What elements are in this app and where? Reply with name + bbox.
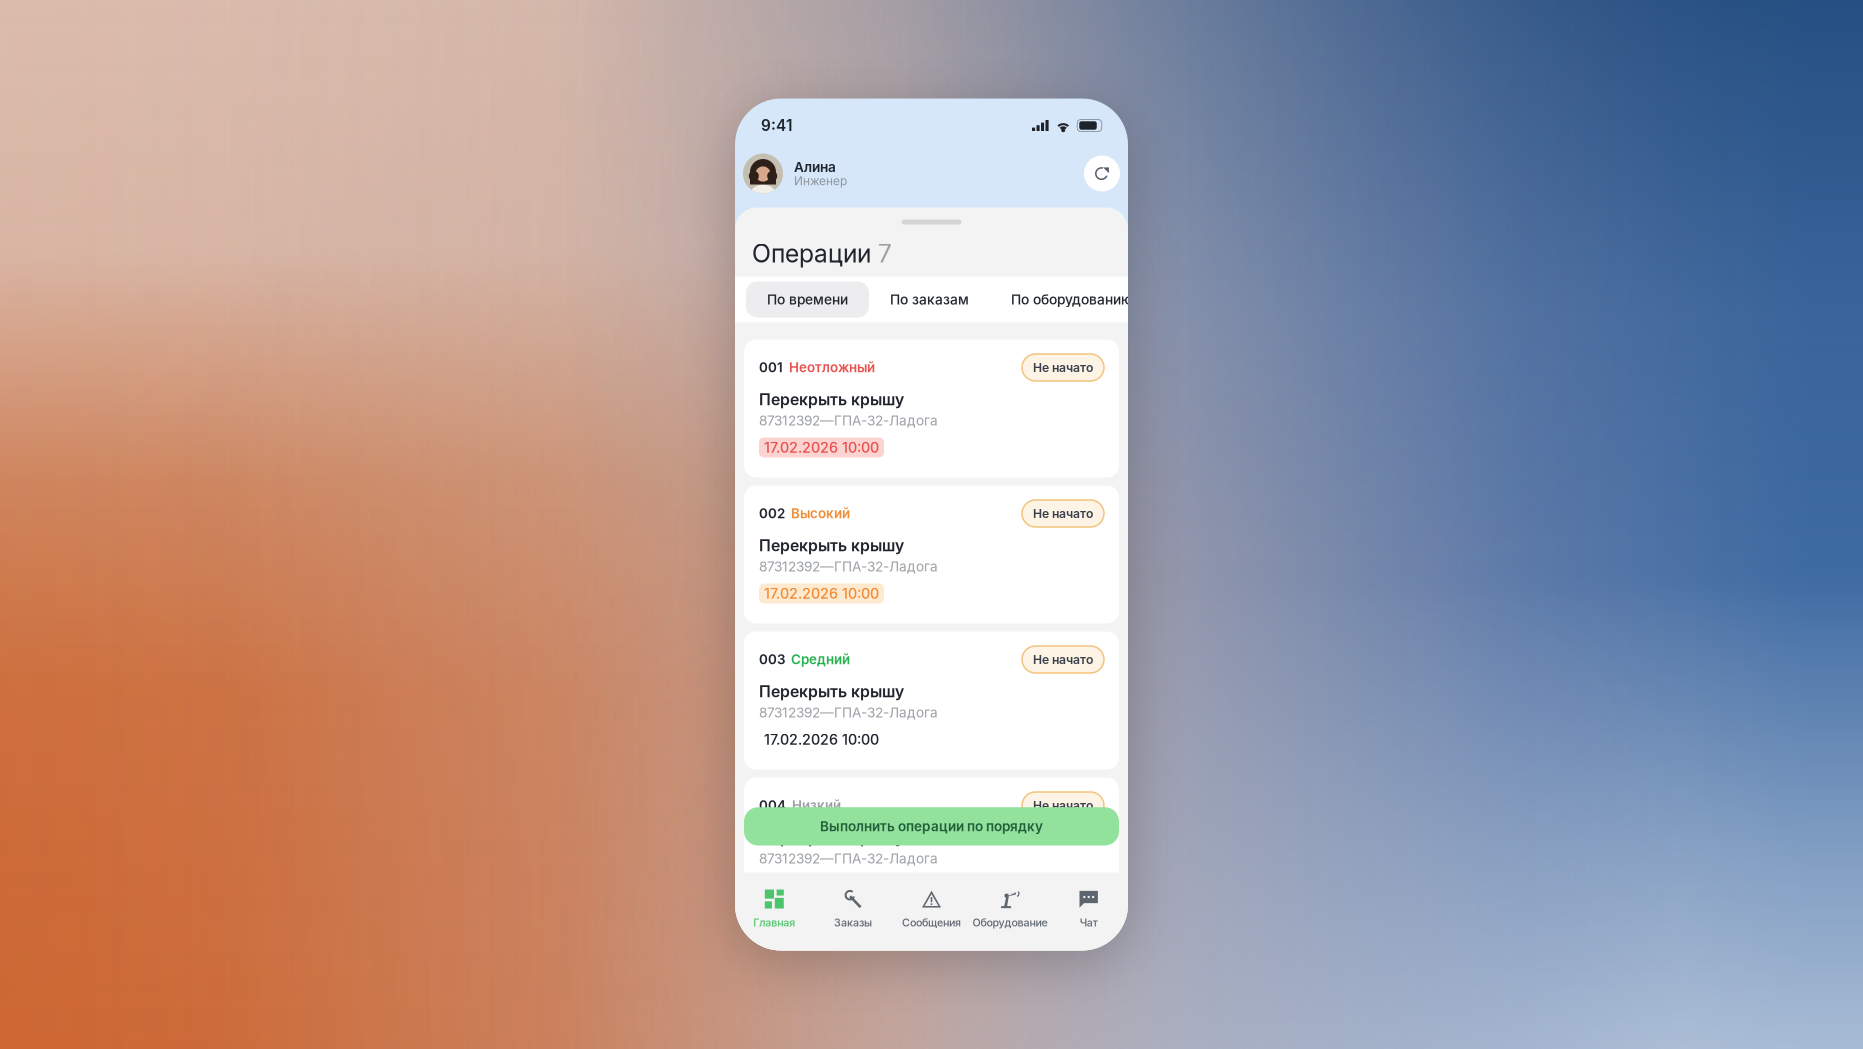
button[interactable]: По времени	[746, 281, 869, 317]
staticText: Оборудование	[973, 916, 1048, 929]
button[interactable]: 004	[744, 777, 1119, 915]
staticText: 002	[759, 505, 785, 521]
staticText: Не начато	[1033, 506, 1093, 521]
staticText: 9:41	[761, 116, 792, 135]
staticText: Не начато	[1033, 798, 1093, 813]
staticText: 17.02.2026 10:00	[764, 731, 879, 748]
button[interactable]: Главная	[735, 872, 814, 950]
staticText: Перекрыть крышу	[759, 536, 904, 555]
staticText: Высокий	[785, 505, 850, 521]
staticText: 87312392—ГПА-32-Ладога	[759, 558, 938, 575]
button[interactable]: 002	[744, 485, 1119, 623]
staticText: Алина	[794, 159, 836, 175]
staticText: Не начато	[1033, 360, 1093, 375]
button[interactable]: Оборудование	[971, 872, 1049, 950]
staticText: Заказы	[834, 916, 872, 929]
button[interactable]: Сообщения	[892, 872, 971, 950]
staticText: Не начато	[1033, 652, 1093, 667]
staticText: По заказам	[890, 291, 969, 308]
staticText: 17.02.2026 10:00	[764, 877, 879, 894]
button[interactable]: По оборудованию	[990, 281, 1154, 317]
staticText: Средний	[785, 651, 850, 667]
staticText: Операции	[752, 238, 871, 268]
button[interactable]: 001	[744, 339, 1119, 477]
staticText: 87312392—ГПА-32-Ладога	[759, 412, 938, 429]
staticText: Сообщения	[902, 916, 961, 929]
staticText: По оборудованию	[1011, 291, 1133, 308]
staticText: Выполнить операции по порядку	[820, 818, 1043, 834]
staticText: 7	[878, 238, 892, 268]
staticText: 001	[759, 359, 783, 375]
staticText: Главная	[753, 916, 795, 929]
staticText: Перекрыть крышу	[759, 390, 904, 409]
staticText: Перекрыть крышу	[759, 828, 904, 847]
button[interactable]: Чат	[1049, 872, 1128, 950]
staticText: Низкий	[786, 797, 841, 813]
staticText: 004	[759, 797, 786, 813]
button[interactable]: Заказы	[814, 872, 892, 950]
staticText: Неотложный	[783, 359, 875, 375]
staticText: 87312392—ГПА-32-Ладога	[759, 850, 938, 867]
staticText: 17.02.2026 10:00	[764, 585, 879, 602]
staticText: Чат	[1080, 916, 1098, 929]
staticText: 003	[759, 651, 785, 667]
button[interactable]: 003	[744, 631, 1119, 769]
button[interactable]: По заказам	[869, 281, 990, 317]
staticText: Инженер	[794, 174, 847, 188]
staticText: 87312392—ГПА-32-Ладога	[759, 704, 938, 721]
button[interactable]: Выполнить операции по порядку	[744, 807, 1119, 845]
staticText: Перекрыть крышу	[759, 682, 904, 701]
staticText: По времени	[767, 291, 848, 308]
staticText: 17.02.2026 10:00	[764, 439, 879, 456]
button[interactable]: Обновить	[1084, 155, 1120, 191]
